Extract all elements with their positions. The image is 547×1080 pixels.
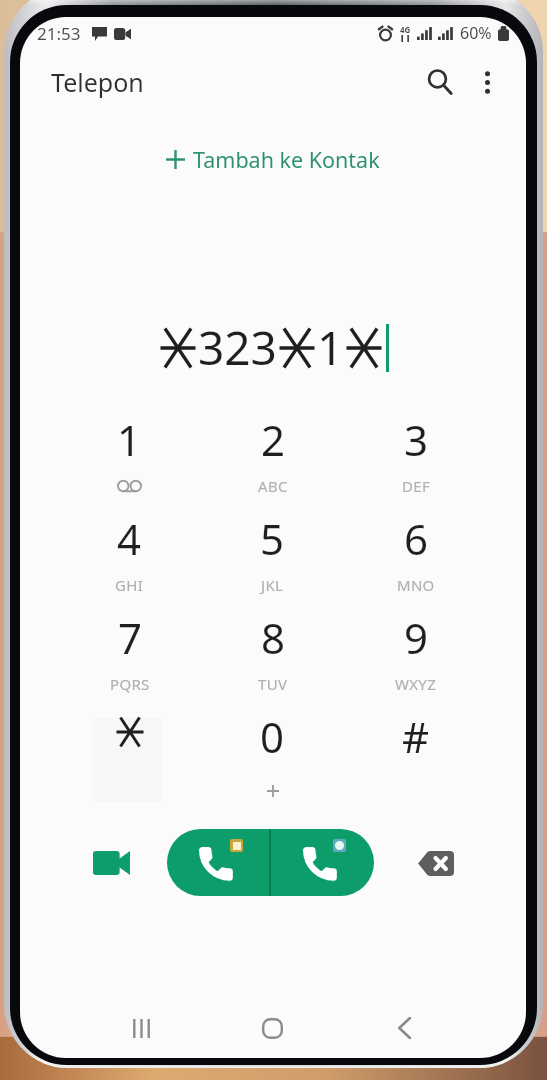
button[interactable]: 2: [201, 404, 344, 503]
button[interactable]: Search: [416, 58, 464, 106]
button[interactable]: Video call: [83, 835, 139, 891]
staticText: 9: [404, 609, 429, 666]
staticText: 6: [404, 510, 429, 567]
button[interactable]: Call with SIM 2: [271, 829, 374, 896]
staticText: 8: [261, 609, 286, 666]
button[interactable]: Home: [245, 1001, 299, 1055]
button[interactable]: 7: [58, 602, 201, 701]
button[interactable]: 0: [201, 701, 344, 800]
button[interactable]: 9: [344, 602, 487, 701]
staticText: 5: [260, 510, 285, 567]
staticText: DEF: [402, 476, 430, 496]
button[interactable]: #: [344, 701, 487, 800]
staticText: MNO: [397, 575, 435, 595]
staticText: ABC: [258, 476, 288, 496]
staticText: 0: [260, 708, 285, 765]
staticText: GHI: [115, 575, 144, 595]
staticText: 4: [117, 510, 142, 567]
staticText: 60%: [460, 22, 492, 44]
staticText: Tambah ke Kontak: [193, 145, 380, 173]
button[interactable]: Recents: [114, 1001, 168, 1055]
staticText: WXYZ: [395, 674, 437, 694]
staticText: PQRS: [110, 674, 150, 694]
staticText: 2: [261, 411, 286, 468]
button[interactable]: [58, 701, 201, 800]
button[interactable]: 6: [344, 503, 487, 602]
button[interactable]: Call with SIM 1: [167, 829, 269, 896]
button[interactable]: 1: [58, 404, 201, 503]
button[interactable]: Backspace: [409, 837, 461, 889]
staticText: 7: [118, 609, 143, 666]
button[interactable]: Back: [377, 1001, 431, 1055]
staticText: 3: [404, 411, 429, 468]
button[interactable]: 5: [201, 503, 344, 602]
staticText: #: [402, 708, 430, 765]
button[interactable]: 8: [201, 602, 344, 701]
button[interactable]: More options: [464, 59, 510, 105]
button[interactable]: 4: [58, 503, 201, 602]
button[interactable]: Tambah ke Kontak: [152, 137, 394, 181]
staticText: 1: [317, 316, 344, 379]
staticText: JKL: [261, 575, 284, 595]
staticText: 21:53: [37, 22, 81, 45]
staticText: 323: [198, 316, 277, 379]
button[interactable]: 3: [344, 404, 487, 503]
staticText: Telepon: [51, 65, 144, 99]
staticText: 4G: [400, 24, 411, 35]
staticText: TUV: [258, 674, 288, 694]
staticText: 1: [117, 411, 142, 468]
